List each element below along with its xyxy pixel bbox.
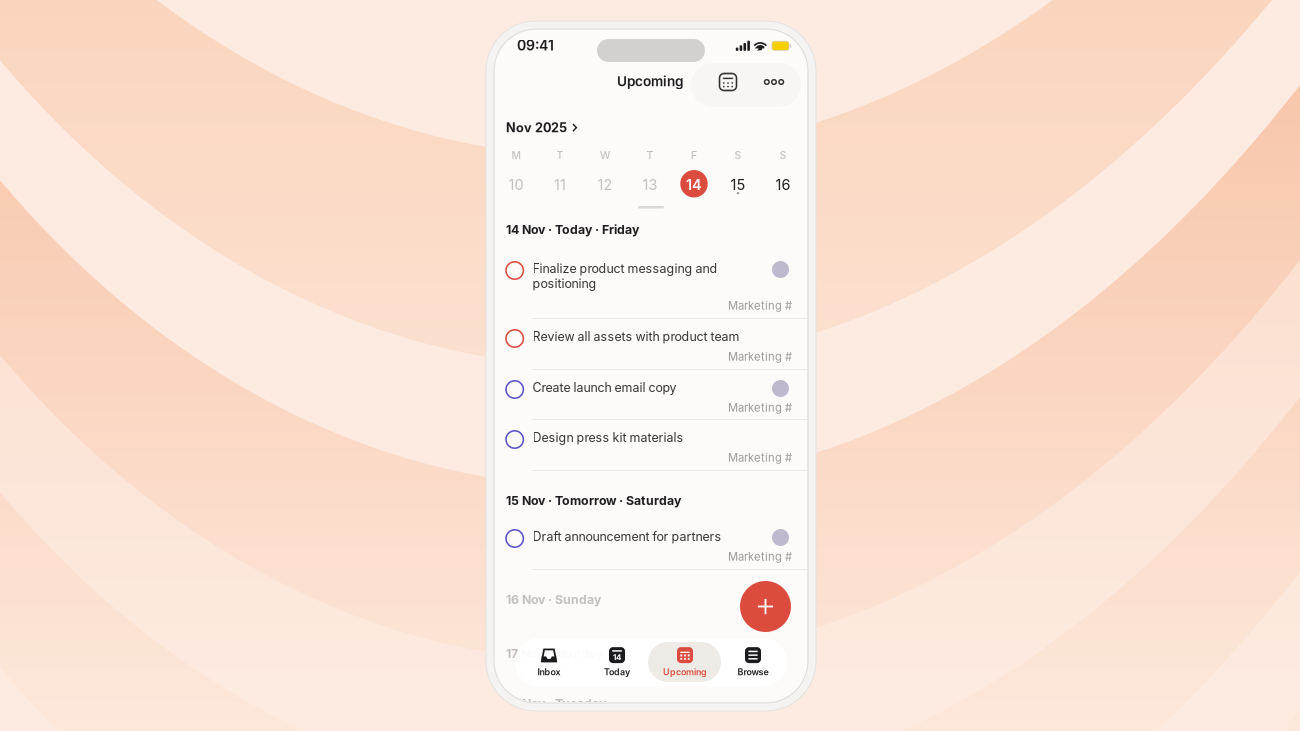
staticText: Design press kit materials [532,430,683,445]
button[interactable]: Inbox [515,638,583,686]
button[interactable]: Finalize product messaging and positioni… [495,261,807,315]
staticText: Browse [737,667,768,677]
button[interactable]: 14 [583,638,651,686]
staticText: Nov 2025 [506,120,567,135]
staticText: T [556,149,563,162]
staticText: 13 [642,176,657,193]
button[interactable]: 10 [501,176,531,206]
button[interactable]: More options [756,64,792,100]
staticText: Marketing # [728,401,792,415]
staticText: Create launch email copy [532,380,676,395]
staticText: 16 [775,176,790,193]
staticText: Marketing # [728,550,792,564]
button[interactable]: 12 [590,176,620,206]
staticText: Marketing # [728,350,792,364]
button[interactable]: Nov 2025 [506,120,577,135]
button[interactable]: 16 [768,176,798,206]
button[interactable]: Calendar view [710,64,746,100]
staticText: 09:41 [517,37,554,54]
button[interactable]: Create launch email copy [495,380,807,417]
button[interactable]: Browse [719,638,787,686]
staticText: S [779,149,786,162]
staticText: Marketing # [728,299,792,313]
staticText: Today [604,667,630,677]
button[interactable]: Design press kit materials [495,430,807,467]
staticText: Marketing # [728,451,792,465]
staticText: M [511,149,520,162]
staticText: T [646,149,653,162]
button[interactable]: Upcoming [651,638,719,686]
button[interactable]: 14 [679,176,709,206]
button[interactable]: 13 [635,176,665,206]
button[interactable]: Review all assets with product team [495,329,807,366]
staticText: 15 [730,176,745,193]
staticText: Inbox [537,667,560,677]
staticText: 18 Nov · Tuesday [506,696,606,711]
staticText: 12 [597,176,612,193]
staticText: S [734,149,741,162]
staticText: 14 Nov · Today · Friday [506,222,639,237]
button[interactable]: 11 [545,176,575,206]
button[interactable]: Draft announcement for partners [495,529,807,566]
button[interactable]: Add task [740,581,791,632]
staticText: Finalize product messaging and positioni… [532,261,717,291]
staticText: W [600,149,610,162]
staticText: 14 [686,176,702,193]
staticText: 11 [554,176,566,193]
staticText: 14 [613,652,621,662]
staticText: F [691,149,697,162]
button[interactable]: 15 [723,176,753,206]
staticText: 17 Nov · Monday [506,646,603,661]
staticText: 10 [508,176,523,193]
staticText: 16 Nov · Sunday [506,592,601,607]
staticText: Review all assets with product team [532,329,739,344]
staticText: 15 Nov · Tomorrow · Saturday [506,493,681,508]
staticText: Draft announcement for partners [532,529,721,544]
staticText: Upcoming [663,667,707,677]
staticText: Upcoming [617,73,684,89]
